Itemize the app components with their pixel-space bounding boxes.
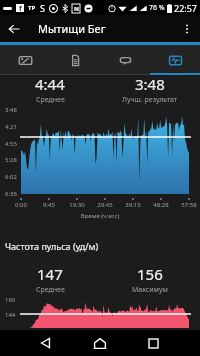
- staticText: 0:00: [9, 201, 33, 209]
- staticText: Время (ч:м:с): [0, 212, 200, 220]
- staticText: 4:55: [5, 140, 17, 148]
- staticText: S: [40, 2, 45, 14]
- staticText: 6:36: [5, 190, 17, 198]
- staticText: 39:15: [121, 201, 145, 209]
- staticText: Мытищи Бег: [38, 21, 106, 36]
- staticText: 144: [5, 311, 16, 319]
- staticText: f: [19, 4, 22, 12]
- button[interactable]: Details: [50, 45, 100, 75]
- staticText: 9:45: [37, 201, 61, 209]
- button[interactable]: Laps: [100, 45, 150, 75]
- staticText: Частота пульса (уд/м): [5, 240, 99, 252]
- staticText: 3:48: [5, 106, 17, 114]
- staticText: 3:48: [135, 74, 165, 94]
- staticText: 5:28: [5, 156, 17, 164]
- button[interactable]: Heart rate: [150, 45, 200, 75]
- button[interactable]: Back: [0, 15, 27, 42]
- staticText: Среднее: [36, 95, 65, 105]
- button[interactable]: Back: [32, 336, 58, 350]
- staticText: 6:02: [5, 173, 17, 181]
- button[interactable]: More options: [173, 15, 200, 42]
- staticText: 156: [137, 264, 163, 284]
- staticText: N: [74, 5, 79, 13]
- staticText: 160: [5, 296, 16, 304]
- button[interactable]: Home: [87, 335, 113, 351]
- staticText: 76 %: [149, 3, 165, 13]
- staticText: 19:30: [65, 201, 89, 209]
- staticText: Максимум: [132, 285, 168, 295]
- staticText: 29:45: [93, 201, 117, 209]
- button[interactable]: Map: [0, 45, 50, 75]
- staticText: 147: [37, 264, 63, 284]
- staticText: 4:21: [5, 123, 17, 131]
- staticText: Среднее: [36, 285, 65, 295]
- staticText: TP: [28, 4, 36, 12]
- staticText: Лучш. результат: [122, 95, 178, 105]
- staticText: 4:44: [35, 74, 65, 94]
- button[interactable]: Recents: [140, 336, 166, 350]
- staticText: 22:57: [174, 2, 198, 14]
- staticText: 48:28: [149, 201, 173, 209]
- staticText: 57:58: [177, 201, 200, 209]
